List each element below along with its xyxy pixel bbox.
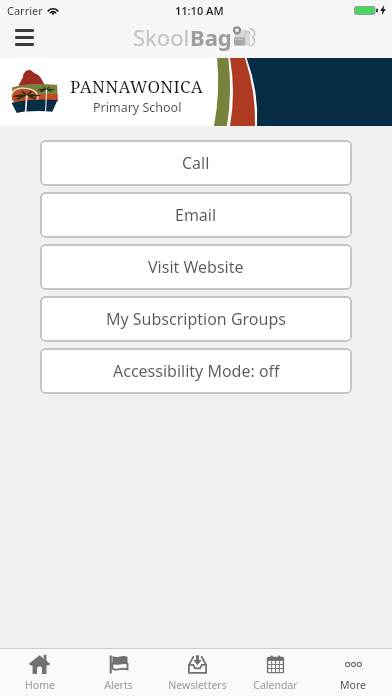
button[interactable]: Calendar (236, 649, 314, 696)
button[interactable]: More (314, 649, 392, 696)
staticText: Primary School (93, 99, 182, 116)
staticText: Calendar (253, 678, 298, 692)
button[interactable]: Menu (0, 20, 48, 58)
staticText: My Subscription Groups (106, 308, 286, 330)
staticText: Carrier (7, 3, 43, 18)
button[interactable]: Newsletters (158, 649, 236, 696)
staticText: PANNAWONICA (70, 75, 204, 98)
staticText: Home (25, 678, 55, 692)
button[interactable]: Home (0, 649, 79, 696)
staticText: 11:10 AM (175, 3, 224, 18)
button[interactable]: Call (40, 140, 352, 186)
staticText: Accessibility Mode: off (113, 360, 280, 382)
staticText: Email (175, 204, 217, 226)
button[interactable]: Email (40, 192, 352, 238)
staticText: More (340, 678, 366, 692)
button[interactable]: Visit Website (40, 244, 352, 290)
button[interactable]: My Subscription Groups (40, 296, 352, 342)
button[interactable]: Alerts (79, 649, 158, 696)
staticText: Alerts (104, 678, 133, 692)
button[interactable]: Accessibility Mode: off (40, 348, 352, 394)
staticText: Visit Website (148, 256, 244, 278)
staticText: Call (182, 152, 210, 174)
staticText: Bag (190, 22, 232, 52)
staticText: Newsletters (168, 678, 227, 692)
staticText: Skool (133, 22, 190, 52)
